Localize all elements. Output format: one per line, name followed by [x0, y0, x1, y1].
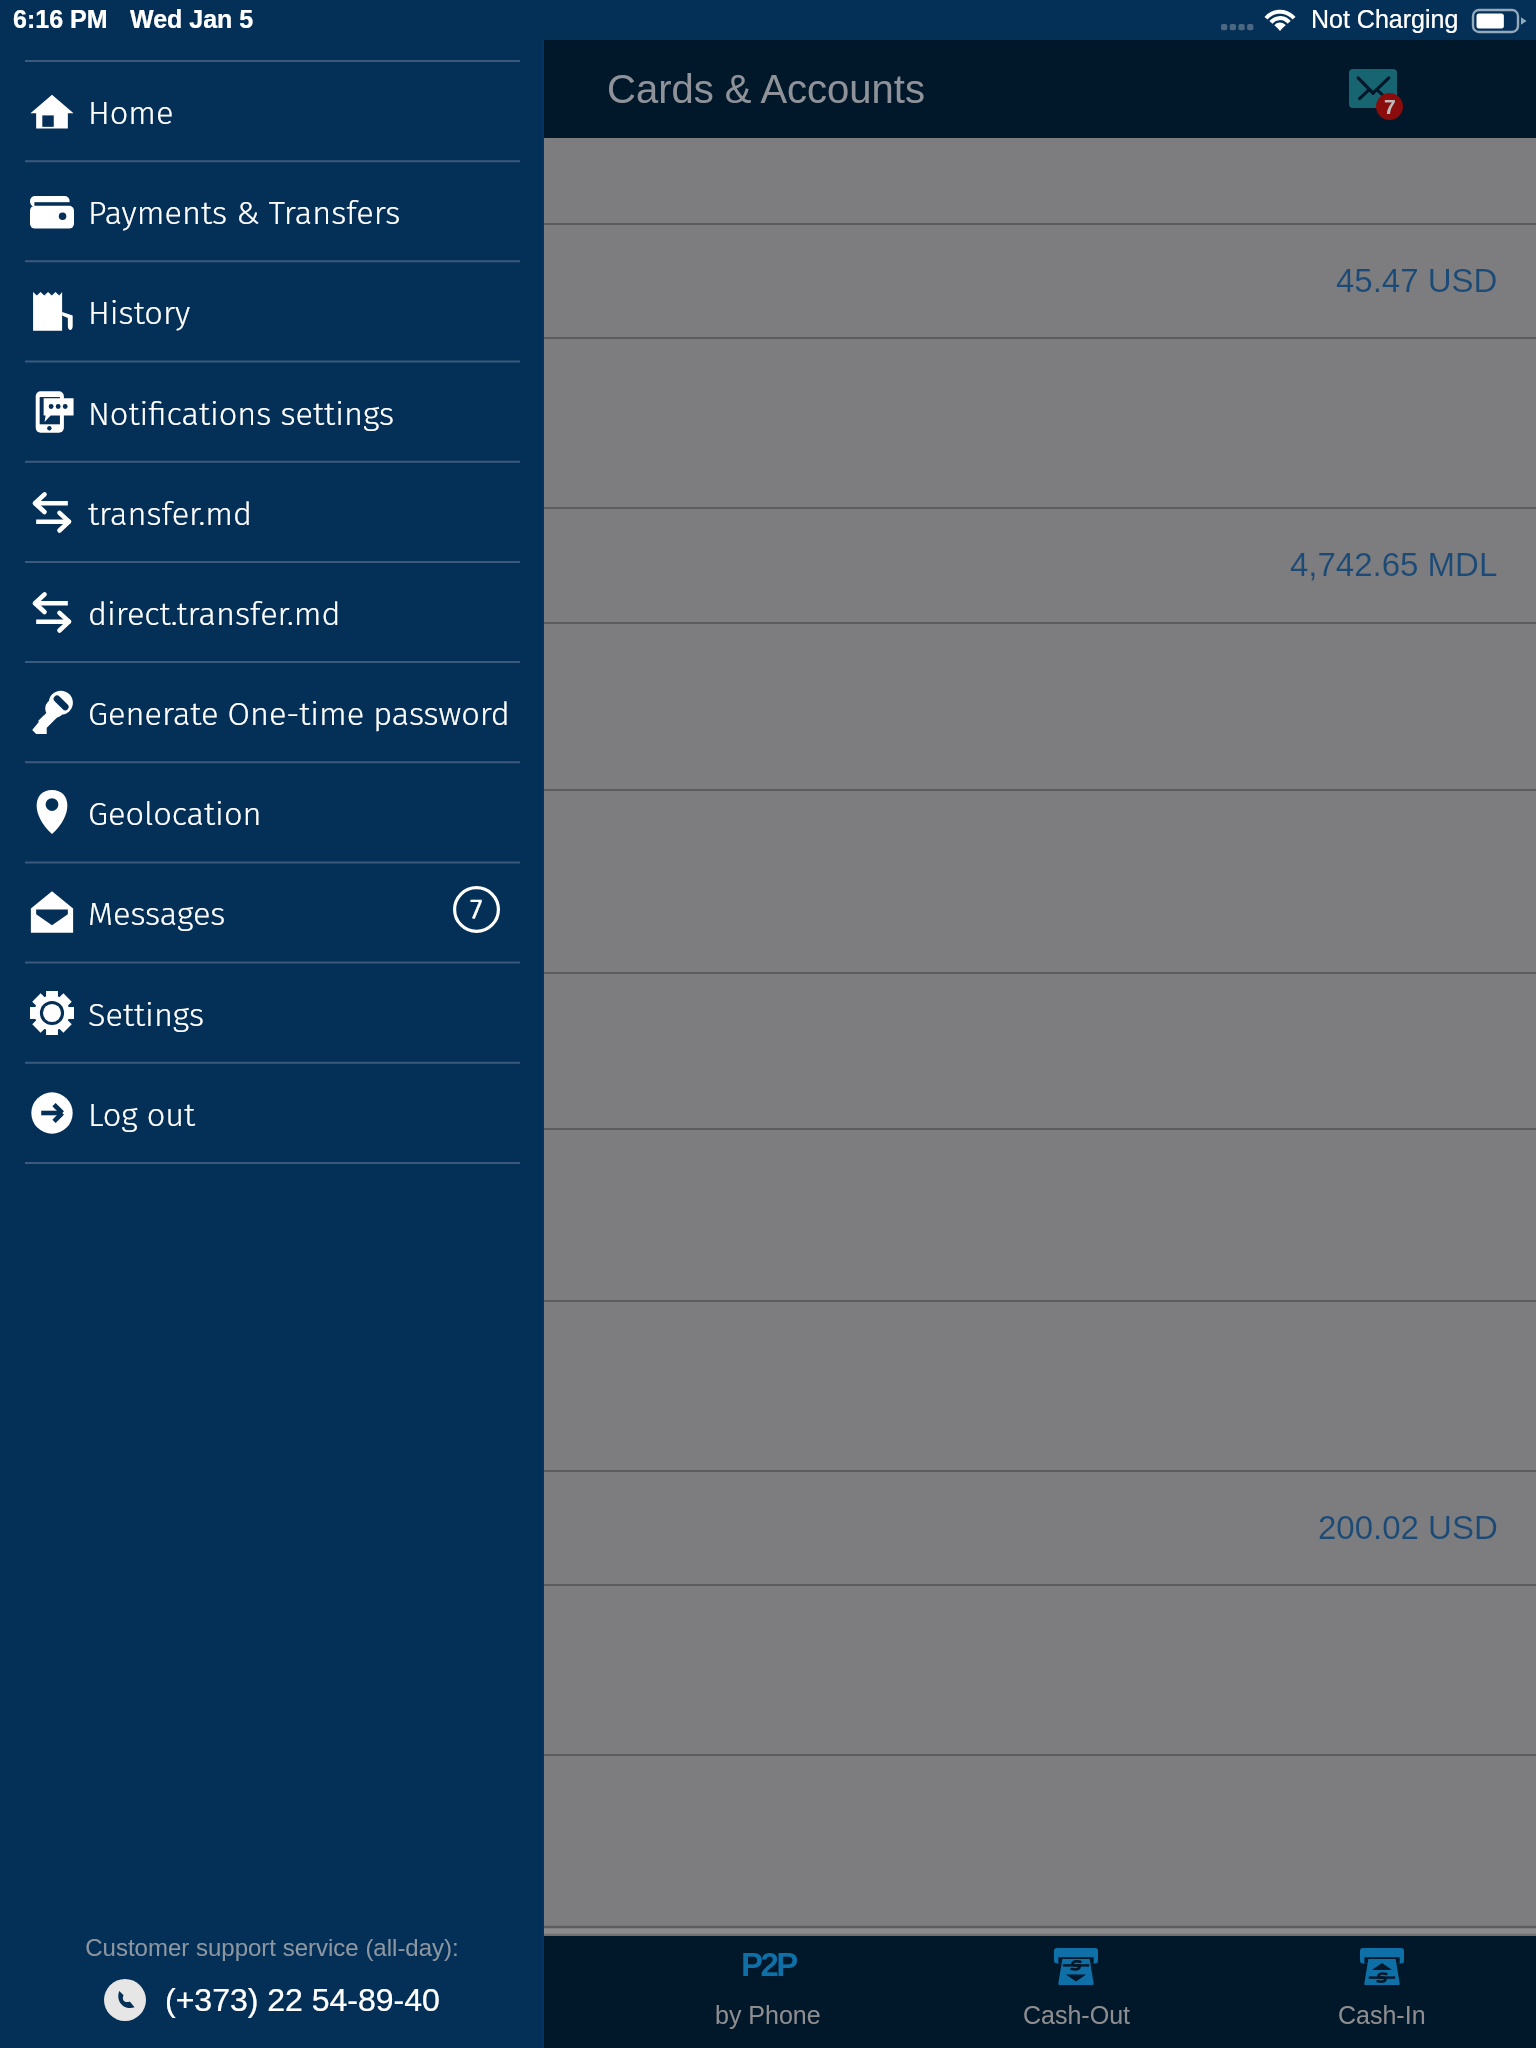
staticText: by Phone: [715, 2001, 821, 2029]
button[interactable]: Messages: [1349, 69, 1425, 125]
button[interactable]: Cash-Out: [946, 1936, 1206, 2048]
staticText: Messages: [88, 895, 226, 934]
button[interactable]: [544, 623, 1536, 790]
button[interactable]: Settings: [0, 963, 544, 1063]
button[interactable]: [544, 790, 1536, 973]
button[interactable]: (+373) 22 54-89-40: [0, 1977, 544, 2023]
button[interactable]: Messages: [0, 862, 544, 962]
staticText: 4,742.65 MDL: [1290, 546, 1498, 583]
staticText: Cash-In: [1338, 2001, 1426, 2029]
button[interactable]: Cash-In: [1252, 1936, 1512, 2048]
button[interactable]: [544, 224, 1536, 338]
staticText: Cash-Out: [1023, 2001, 1130, 2029]
button[interactable]: P2P: [638, 1936, 898, 2048]
staticText: Log out: [88, 1096, 196, 1135]
staticText: History: [88, 294, 191, 333]
staticText: Payments & Transfers: [88, 194, 401, 233]
button[interactable]: History: [0, 261, 544, 361]
staticText: Wed Jan 5: [130, 5, 254, 33]
staticText: Geolocation: [88, 795, 262, 834]
button[interactable]: [544, 1471, 1536, 1585]
button[interactable]: direct.transfer.md: [0, 562, 544, 662]
button[interactable]: [544, 338, 1536, 508]
staticText: Cards & Accounts: [607, 67, 925, 112]
staticText: Notifications settings: [88, 395, 395, 434]
staticText: 45.47 USD: [1336, 262, 1498, 299]
staticText: transfer.md: [88, 495, 253, 534]
staticText: Not Charging: [1311, 5, 1459, 33]
button[interactable]: [544, 1301, 1536, 1471]
button[interactable]: [544, 1585, 1536, 1755]
staticText: direct.transfer.md: [88, 595, 341, 634]
button[interactable]: transfer.md: [0, 462, 544, 562]
button[interactable]: [544, 973, 1536, 1129]
button[interactable]: [544, 1129, 1536, 1301]
staticText: Home: [88, 94, 174, 133]
button[interactable]: [544, 138, 1536, 224]
button[interactable]: [544, 508, 1536, 623]
staticText: Customer support service (all-day):: [0, 1934, 544, 1961]
staticText: Generate One-time password: [88, 695, 510, 734]
button[interactable]: Generate One-time password: [0, 662, 544, 762]
staticText: (+373) 22 54-89-40: [165, 1982, 440, 2018]
staticText: 6:16 PM: [13, 5, 108, 33]
staticText: P2P: [741, 1946, 796, 1983]
staticText: Settings: [88, 996, 205, 1035]
button[interactable]: Geolocation: [0, 762, 544, 862]
button[interactable]: Home: [0, 61, 544, 161]
button[interactable]: Notifications settings: [0, 362, 544, 462]
button[interactable]: Payments & Transfers: [0, 161, 544, 261]
button[interactable]: Log out: [0, 1063, 544, 1163]
button[interactable]: [544, 1755, 1536, 1927]
staticText: 200.02 USD: [1318, 1509, 1498, 1546]
staticText: 7: [1384, 95, 1396, 118]
staticText: 7: [470, 893, 483, 927]
